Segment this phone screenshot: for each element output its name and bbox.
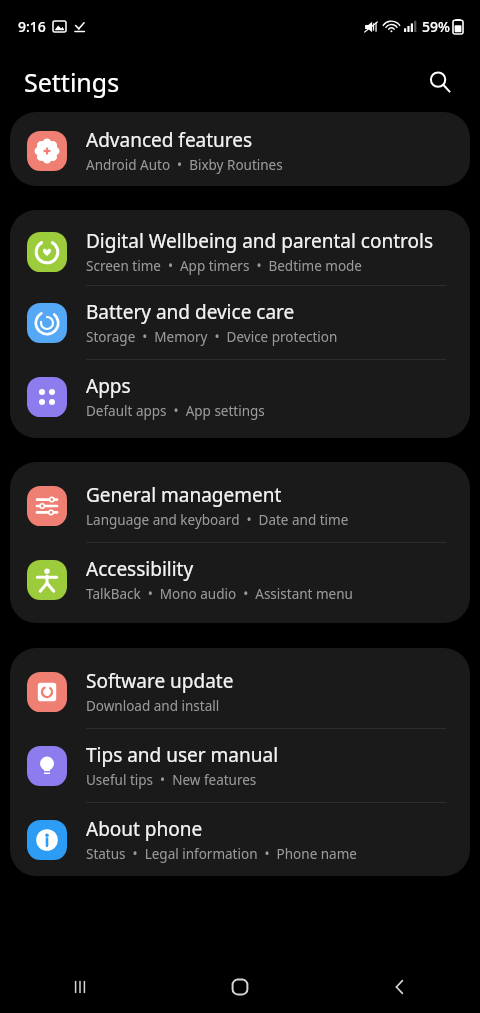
button[interactable]: About phone <box>10 803 470 876</box>
staticText: Accessibility <box>86 556 194 582</box>
staticText: 9:16 <box>18 17 46 36</box>
staticText: Screen time • App timers • Bedtime mode <box>86 257 362 275</box>
staticText: Battery and device care <box>86 299 295 325</box>
staticText: General management <box>86 482 282 508</box>
staticText: Apps <box>86 373 131 399</box>
staticText: About phone <box>86 816 203 842</box>
staticText: Status • Legal information • Phone name <box>86 845 357 863</box>
button[interactable]: Back <box>320 961 480 1013</box>
button[interactable]: Apps <box>10 360 470 428</box>
staticText: Storage • Memory • Device protection <box>86 328 338 346</box>
staticText: Settings <box>24 65 120 99</box>
staticText: Download and install <box>86 697 220 715</box>
button[interactable]: Digital Wellbeing and parental controls <box>10 220 470 285</box>
button[interactable]: Tips and user manual <box>10 729 470 802</box>
button[interactable]: General management <box>10 472 470 542</box>
staticText: Useful tips • New features <box>86 771 257 789</box>
staticText: TalkBack • Mono audio • Assistant menu <box>86 585 353 603</box>
button[interactable]: Advanced features <box>10 121 470 186</box>
staticText: Advanced features <box>86 127 253 153</box>
button[interactable]: Home <box>160 961 320 1013</box>
staticText: Software update <box>86 668 234 694</box>
button[interactable]: Battery and device care <box>10 286 470 359</box>
staticText: Language and keyboard • Date and time <box>86 511 349 529</box>
button[interactable]: Software update <box>10 658 470 728</box>
button[interactable]: Recents <box>0 961 160 1013</box>
staticText: Default apps • App settings <box>86 402 265 420</box>
staticText: Android Auto • Bixby Routines <box>86 156 283 174</box>
button[interactable]: Search <box>418 60 462 104</box>
staticText: Digital Wellbeing and parental controls <box>86 228 434 254</box>
staticText: Tips and user manual <box>86 742 279 768</box>
staticText: 59% <box>422 17 450 36</box>
button[interactable]: Accessibility <box>10 543 470 613</box>
